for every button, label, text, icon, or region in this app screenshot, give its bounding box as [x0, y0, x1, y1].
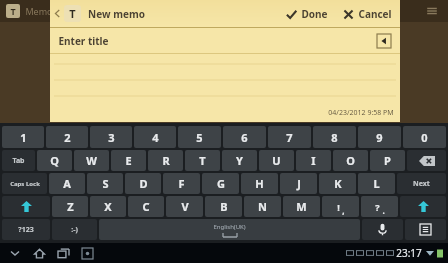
button[interactable]: 4 — [134, 126, 176, 148]
staticText: H — [255, 176, 264, 191]
staticText: Caps Lock — [10, 180, 40, 188]
staticText: Cancel — [358, 7, 392, 21]
button[interactable]: ! — [322, 196, 359, 217]
button[interactable]: I — [296, 150, 331, 171]
staticText: 9 — [376, 130, 383, 145]
button[interactable]: 2 — [46, 126, 88, 148]
staticText: F — [178, 176, 185, 191]
button[interactable]: Collapse — [376, 33, 392, 49]
button[interactable]: 3 — [90, 126, 132, 148]
button[interactable]: Cancel — [339, 4, 396, 24]
staticText: D — [139, 176, 148, 191]
button[interactable]: Done — [282, 4, 332, 24]
button[interactable]: X — [90, 196, 126, 217]
button[interactable]: D — [125, 173, 161, 194]
button[interactable]: B — [205, 196, 242, 217]
button[interactable]: R — [148, 150, 183, 171]
button[interactable]: 8 — [313, 126, 356, 148]
button[interactable]: Z — [52, 196, 88, 217]
button[interactable]: 1 — [2, 126, 44, 148]
staticText: Done — [301, 7, 328, 21]
button[interactable]: 0 — [403, 126, 446, 148]
button[interactable]: 5 — [178, 126, 221, 148]
staticText: R — [162, 153, 170, 168]
staticText: Z — [67, 199, 74, 214]
staticText: C — [142, 199, 150, 214]
staticText: 5 — [196, 130, 203, 145]
button[interactable]: U — [259, 150, 294, 171]
button[interactable]: M — [283, 196, 320, 217]
button[interactable]: ? — [361, 196, 398, 217]
button[interactable]: J — [280, 173, 317, 194]
button[interactable]: C — [128, 196, 164, 217]
staticText: Memo — [25, 5, 53, 17]
staticText: Q — [50, 153, 59, 168]
button[interactable]: Caps Lock — [2, 173, 47, 194]
button[interactable]: Q — [37, 150, 72, 171]
staticText: J — [297, 176, 301, 191]
staticText: Enter title — [58, 34, 109, 48]
staticText: G — [217, 176, 225, 191]
button[interactable]: E — [111, 150, 146, 171]
button[interactable]: A — [49, 173, 85, 194]
button[interactable]: P — [370, 150, 405, 171]
staticText: T — [69, 6, 76, 21]
staticText: 2 — [64, 130, 71, 145]
button[interactable]: English(UK) — [99, 219, 360, 240]
staticText: K — [334, 176, 342, 191]
staticText: ? — [375, 201, 380, 213]
button[interactable]: Tab — [2, 150, 35, 171]
button[interactable]: T — [185, 150, 220, 171]
button[interactable]: S — [87, 173, 123, 194]
button[interactable]: 6 — [223, 126, 266, 148]
staticText: P — [384, 153, 391, 168]
button[interactable]: V — [166, 196, 203, 217]
button[interactable]: W — [74, 150, 109, 171]
staticText: N — [258, 199, 267, 214]
button[interactable]: K — [319, 173, 356, 194]
staticText: . — [382, 205, 385, 216]
button[interactable]: Shift — [2, 196, 50, 217]
staticText: 3 — [108, 130, 115, 145]
button[interactable]: Keyboard settings — [405, 219, 446, 240]
staticText: 6 — [241, 130, 248, 145]
staticText: T — [199, 153, 206, 168]
button[interactable]: L — [358, 173, 395, 194]
staticText: O — [346, 153, 355, 168]
button[interactable]: Hide keyboard — [6, 244, 24, 262]
staticText: S — [102, 176, 109, 191]
button[interactable]: Recent apps — [54, 244, 72, 262]
staticText: Tab — [12, 156, 25, 166]
staticText: 0 — [421, 130, 428, 145]
staticText: V — [181, 199, 189, 214]
staticText: Next — [413, 179, 430, 189]
button[interactable]: :-) — [52, 219, 97, 240]
button[interactable]: N — [244, 196, 281, 217]
button[interactable]: Backspace — [407, 150, 446, 171]
staticText: W — [86, 153, 97, 168]
staticText: 23:17 — [396, 246, 422, 260]
button[interactable]: F — [163, 173, 200, 194]
staticText: Y — [236, 153, 243, 168]
button[interactable]: 9 — [358, 126, 401, 148]
button[interactable]: Screenshot — [78, 244, 96, 262]
staticText: :-) — [71, 225, 78, 235]
staticText: M — [296, 199, 307, 214]
button[interactable]: Shift — [400, 196, 446, 217]
staticText: English(UK) — [213, 223, 246, 231]
staticText: ! — [337, 201, 340, 213]
button[interactable]: Home — [30, 244, 48, 262]
button[interactable]: G — [202, 173, 239, 194]
button[interactable]: ?123 — [2, 219, 50, 240]
button[interactable]: Voice input — [362, 219, 403, 240]
staticText: 04/23/2012 9:58 PM — [328, 108, 394, 118]
staticText: 1 — [20, 130, 27, 145]
staticText: T — [10, 5, 16, 17]
button[interactable]: O — [333, 150, 368, 171]
button[interactable]: H — [241, 173, 278, 194]
staticText: 4 — [152, 130, 159, 145]
staticText: B — [220, 199, 228, 214]
button[interactable]: Y — [222, 150, 257, 171]
button[interactable]: Next — [397, 173, 446, 194]
button[interactable]: 7 — [268, 126, 311, 148]
